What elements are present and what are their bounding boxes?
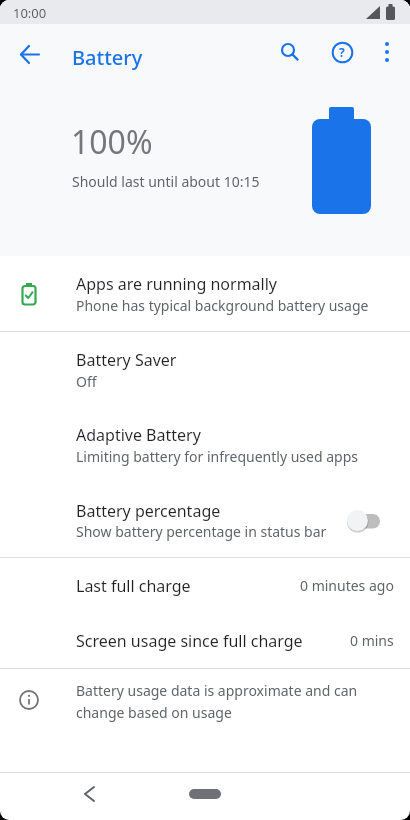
button[interactable] xyxy=(363,28,410,76)
staticText: Phone has typical background battery usa… xyxy=(76,296,369,315)
staticText: Last full charge xyxy=(76,575,191,597)
button[interactable]: Adaptive Battery xyxy=(0,408,410,484)
button[interactable]: Battery percentage xyxy=(0,484,410,557)
staticText: Should last until about 10:15 xyxy=(72,172,260,191)
staticText: Screen usage since full charge xyxy=(76,630,303,652)
staticText: Battery percentage xyxy=(76,500,221,522)
staticText: Show battery percentage in status bar xyxy=(76,522,327,541)
button[interactable] xyxy=(189,789,221,799)
staticText: Limiting battery for infrequently used a… xyxy=(76,447,358,466)
button[interactable]: ? xyxy=(318,28,366,76)
staticText: Off xyxy=(76,372,97,391)
button[interactable] xyxy=(266,28,314,76)
button[interactable]: Last full charge xyxy=(0,558,410,613)
staticText: Battery usage data is approximate and ca… xyxy=(76,681,358,700)
staticText: Adaptive Battery xyxy=(76,424,201,446)
staticText: change based on usage xyxy=(76,703,232,722)
staticText: Battery xyxy=(72,44,143,71)
staticText: ? xyxy=(339,44,345,60)
staticText: Apps are running normally xyxy=(76,273,277,295)
button[interactable]: Apps are running normally xyxy=(0,256,410,332)
button[interactable] xyxy=(65,770,113,818)
staticText: 0 minutes ago xyxy=(300,576,394,595)
button[interactable] xyxy=(6,30,54,78)
button[interactable]: Battery Saver xyxy=(0,332,410,408)
staticText: 0 mins xyxy=(350,631,394,650)
staticText: Battery Saver xyxy=(76,349,177,371)
button[interactable]: Screen usage since full charge xyxy=(0,613,410,668)
staticText: 10:00 xyxy=(13,4,47,22)
staticText: 100% xyxy=(71,120,153,164)
